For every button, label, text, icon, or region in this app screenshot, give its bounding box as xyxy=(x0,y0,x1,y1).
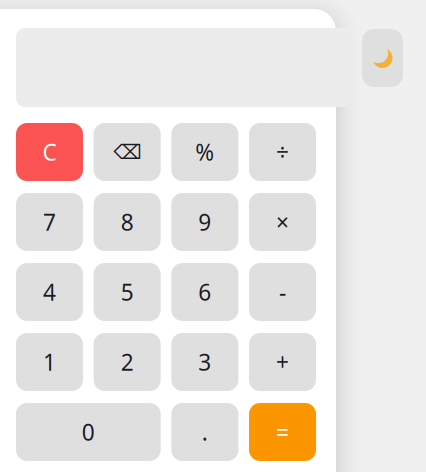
button[interactable]: 6 xyxy=(171,263,238,321)
staticText: = xyxy=(276,417,289,447)
staticText: 8 xyxy=(121,207,134,237)
staticText: C xyxy=(42,137,56,167)
staticText: 1 xyxy=(43,347,56,377)
button[interactable]: 0 xyxy=(16,403,161,461)
button[interactable]: + xyxy=(249,333,316,391)
button[interactable]: - xyxy=(249,263,316,321)
button[interactable]: = xyxy=(249,403,316,461)
button[interactable]: × xyxy=(249,193,316,251)
button[interactable]: ÷ xyxy=(249,123,316,181)
staticText: 9 xyxy=(198,207,211,237)
button[interactable]: C xyxy=(16,123,83,181)
staticText: 3 xyxy=(198,347,211,377)
button[interactable]: 2 xyxy=(94,333,161,391)
button[interactable]: 9 xyxy=(171,193,238,251)
staticText: + xyxy=(276,347,289,377)
staticText: - xyxy=(279,277,286,307)
staticText: 0 xyxy=(82,417,95,447)
staticText: ⌫ xyxy=(113,141,141,163)
button[interactable]: 1 xyxy=(16,333,83,391)
staticText: 5 xyxy=(121,277,134,307)
staticText: 6 xyxy=(198,277,211,307)
button[interactable]: 3 xyxy=(171,333,238,391)
button[interactable]: % xyxy=(171,123,238,181)
staticText: ÷ xyxy=(276,137,289,167)
button[interactable]: 5 xyxy=(94,263,161,321)
button[interactable]: 4 xyxy=(16,263,83,321)
button[interactable]: 7 xyxy=(16,193,83,251)
staticText: 2 xyxy=(121,347,134,377)
staticText: % xyxy=(195,137,214,167)
button[interactable]: Toggle dark mode xyxy=(362,29,403,87)
button[interactable]: . xyxy=(171,403,238,461)
staticText: . xyxy=(202,417,208,447)
staticText: 4 xyxy=(43,277,56,307)
staticText: 7 xyxy=(43,207,56,237)
staticText: × xyxy=(276,207,289,237)
button[interactable]: ⌫ xyxy=(94,123,161,181)
button[interactable]: 8 xyxy=(94,193,161,251)
